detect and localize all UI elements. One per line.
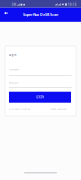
staticText: Superflux DeSB Scan <box>23 12 58 17</box>
button[interactable]: LOGIN <box>9 92 71 103</box>
button[interactable]: Back <box>1 9 10 18</box>
staticText: Click here to sign up <box>9 107 30 110</box>
button[interactable]: Click here to sign up <box>9 107 30 110</box>
staticText: Password <box>9 81 18 84</box>
staticText: Username <box>9 68 19 71</box>
staticText: Forgot password <box>50 107 66 110</box>
staticText: Login <box>9 53 17 57</box>
staticText: LOGIN <box>36 95 44 99</box>
staticText: 3M <box>11 3 16 7</box>
staticText: 10:15 <box>68 2 77 6</box>
button[interactable]: Forgot password <box>50 107 66 110</box>
